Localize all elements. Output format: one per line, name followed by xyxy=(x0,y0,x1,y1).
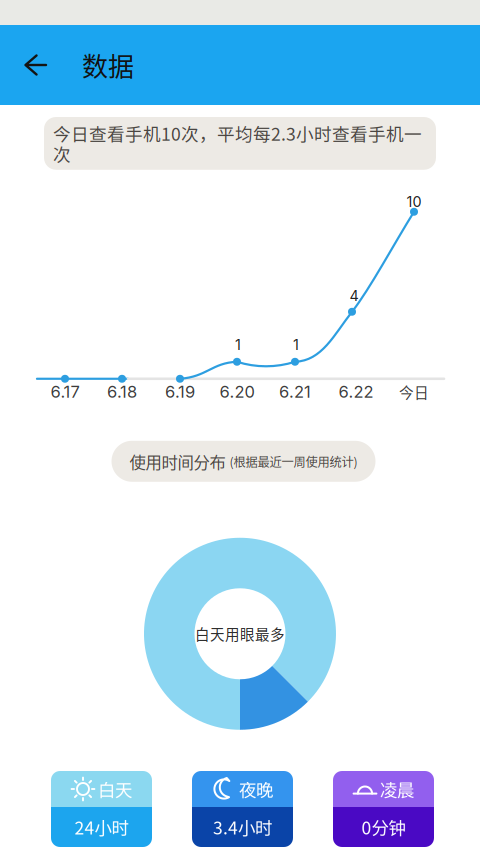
staticText: 3.4小时 xyxy=(213,814,272,840)
staticText: 6.20 xyxy=(219,382,254,402)
staticText: 6.17 xyxy=(50,382,79,402)
staticText: 0分钟 xyxy=(361,814,405,840)
staticText: 夜晚 xyxy=(239,776,273,802)
staticText: 凌晨 xyxy=(380,776,414,802)
staticText: 今日查看手机10次，平均每2.3小时查看手机一次 xyxy=(53,123,422,164)
button[interactable]: 夜晚 3.4小时 xyxy=(192,771,293,847)
button[interactable]: 凌晨 0分钟 xyxy=(333,771,434,847)
staticText: 1 xyxy=(293,336,299,353)
staticText: 6.21 xyxy=(279,382,311,402)
staticText: 白天 xyxy=(98,776,132,802)
staticText: 白天用眼最多 xyxy=(195,623,285,644)
staticText: 今日 xyxy=(399,381,429,402)
button[interactable]: Back xyxy=(0,25,72,105)
staticText: 数据 xyxy=(82,46,134,84)
staticText: 10 xyxy=(406,193,421,210)
staticText: 使用时间分布 xyxy=(129,449,225,473)
staticText: 24小时 xyxy=(74,814,128,840)
staticText: 6.22 xyxy=(338,382,373,402)
staticText: 1 xyxy=(235,336,241,353)
staticText: 6.19 xyxy=(165,382,195,402)
staticText: (根据最近一周使用统计) xyxy=(229,452,357,470)
staticText: 4 xyxy=(349,287,358,304)
staticText: 6.18 xyxy=(107,382,137,402)
button[interactable]: 白天 24小时 xyxy=(51,771,152,847)
